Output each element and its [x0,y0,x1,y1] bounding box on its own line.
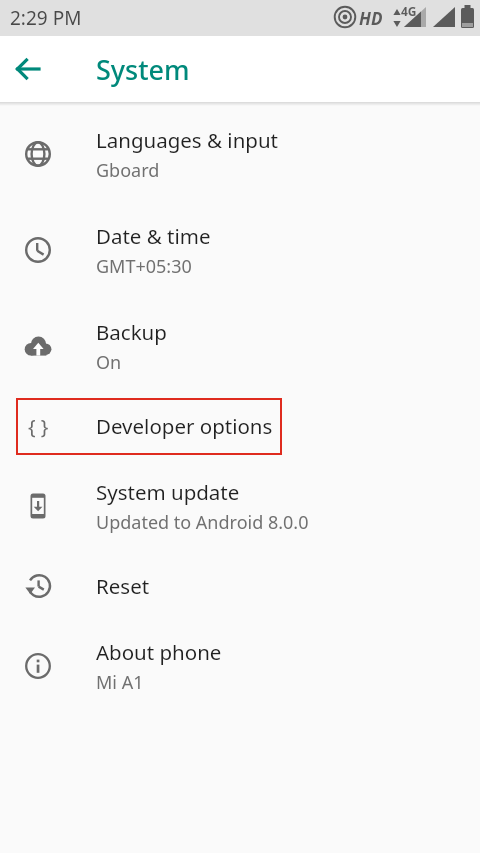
staticText: Languages & input [96,126,278,154]
button[interactable] [0,41,56,97]
button[interactable]: { } [0,394,480,458]
staticText: System update [96,478,240,506]
staticText: 4G [401,3,417,19]
button[interactable]: Backup [0,298,480,394]
staticText: Gboard [96,158,160,183]
button[interactable]: Reset [0,554,480,618]
button[interactable]: Languages & input [0,106,480,202]
staticText: Backup [96,318,167,346]
staticText: { } [28,413,49,440]
staticText: 2:29 PM [10,5,82,31]
staticText: HD [359,7,383,30]
staticText: Date & time [96,222,211,250]
button[interactable]: About phone [0,618,480,714]
staticText: GMT+05:30 [96,254,192,279]
staticText: Updated to Android 8.0.0 [96,510,309,535]
staticText: Reset [96,572,150,600]
staticText: About phone [96,638,222,666]
staticText: On [96,350,122,375]
button[interactable]: Date & time [0,202,480,298]
staticText: Mi A1 [96,670,144,695]
staticText: System [96,51,190,88]
staticText: Developer options [96,412,273,440]
button[interactable]: System update [0,458,480,554]
